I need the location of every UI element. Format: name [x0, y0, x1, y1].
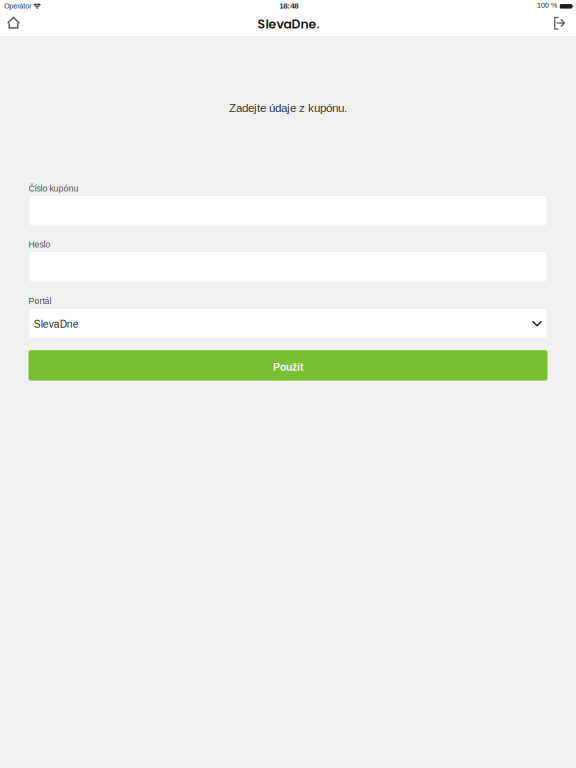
staticText: .	[317, 15, 320, 33]
button[interactable]: Sign out	[548, 13, 574, 37]
staticText: 100 %	[537, 1, 557, 9]
button[interactable]: SlevaDne	[28, 308, 547, 339]
staticText: Heslo	[28, 240, 50, 249]
staticText: Použít	[273, 361, 303, 373]
staticText: SlevaDne	[34, 318, 79, 330]
button[interactable]: Home	[0, 13, 26, 37]
staticText: Zadejte údaje z kupónu.	[229, 102, 347, 115]
staticText: Operátor	[4, 2, 31, 10]
staticText: Číslo kupónu	[28, 184, 78, 193]
staticText: Portál	[28, 296, 51, 306]
staticText: SlevaDne	[258, 15, 317, 33]
button[interactable]: Použít	[28, 350, 547, 381]
staticText: 18:48	[279, 1, 298, 10]
